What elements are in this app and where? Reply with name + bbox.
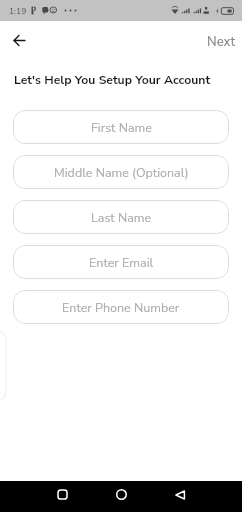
button[interactable]: Next <box>207 33 236 51</box>
button[interactable]: Enter Phone Number <box>13 290 229 324</box>
button[interactable]: First Name <box>13 110 229 144</box>
button[interactable]: Back <box>7 28 31 52</box>
button[interactable]: Recent apps <box>48 480 77 509</box>
staticText: Last Name <box>91 209 152 226</box>
button[interactable]: Middle Name (Optional) <box>13 155 229 189</box>
button[interactable]: Back <box>165 480 194 509</box>
button[interactable]: Home <box>107 480 136 509</box>
staticText: Let's Help You Setup Your Account <box>14 72 211 89</box>
staticText: Next <box>207 33 236 51</box>
staticText: 1:19 <box>9 5 27 17</box>
staticText: Enter Phone Number <box>62 299 180 316</box>
staticText: Enter Email <box>89 254 154 271</box>
button[interactable]: Enter Email <box>13 245 229 279</box>
button[interactable]: Last Name <box>13 200 229 234</box>
staticText: First Name <box>91 119 152 136</box>
staticText: Middle Name (Optional) <box>54 164 189 181</box>
